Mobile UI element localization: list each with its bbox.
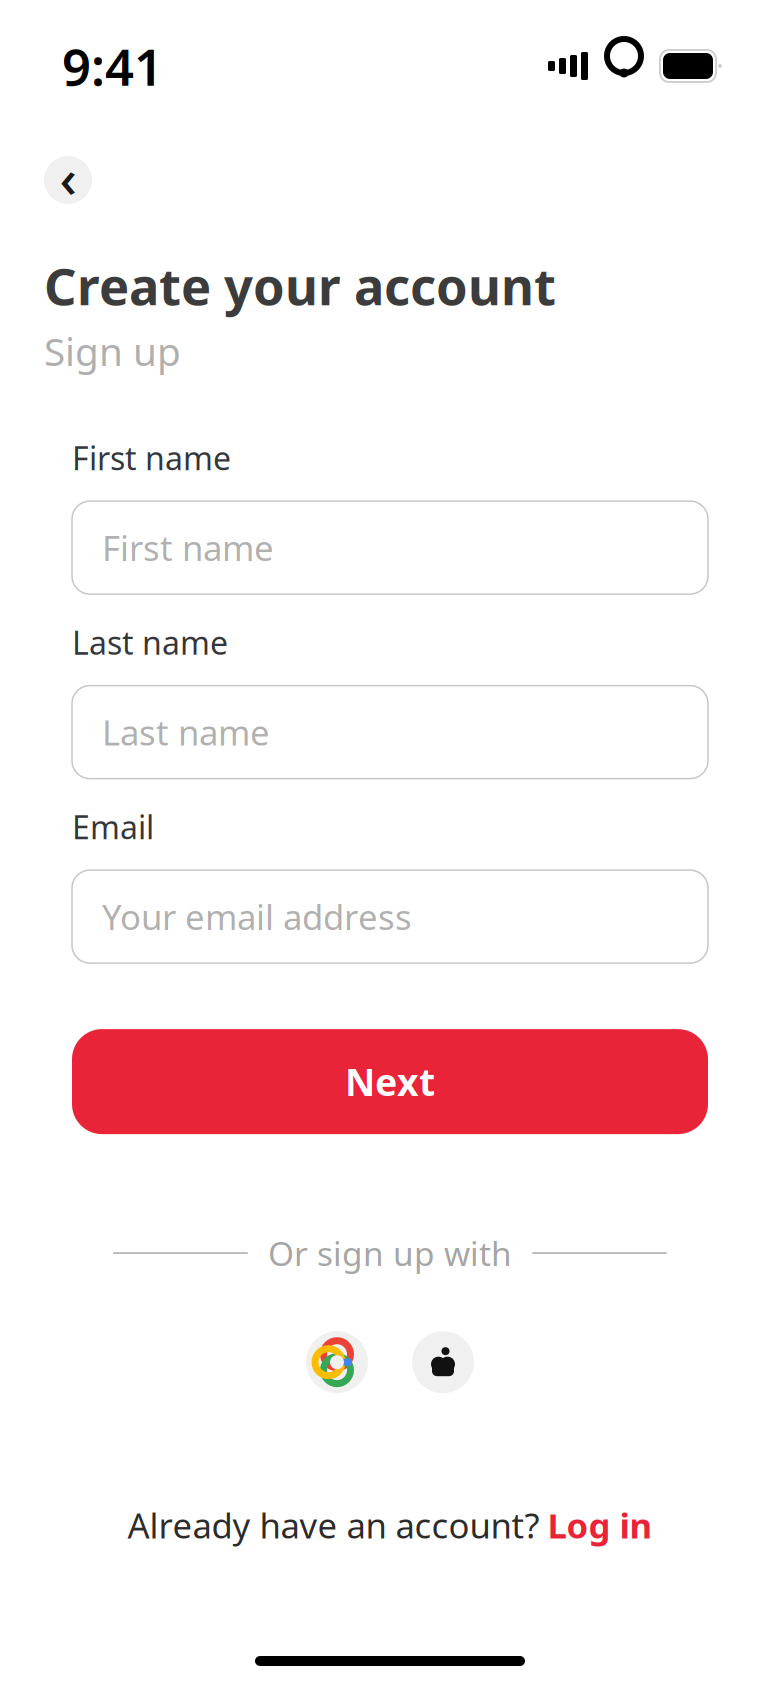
staticText: ‹ <box>59 142 76 212</box>
staticText: Log in <box>547 1502 652 1548</box>
staticText: 9:41 <box>62 32 163 100</box>
staticText: First name <box>102 525 274 571</box>
staticText: Your email address <box>102 894 412 940</box>
staticText: Email <box>72 806 154 848</box>
button[interactable]: Last name <box>72 686 708 779</box>
button[interactable]: Your email address <box>72 870 708 963</box>
staticText: Next <box>345 1057 435 1106</box>
button[interactable]: Next <box>72 1029 708 1134</box>
staticText: Create your account <box>44 252 556 319</box>
staticText: Or sign up with <box>268 1231 512 1275</box>
button[interactable]: Sign up with Apple <box>412 1331 474 1393</box>
button[interactable]: First name <box>72 501 708 594</box>
button[interactable]: Sign up with Google <box>306 1331 368 1393</box>
staticText: First name <box>72 437 231 479</box>
staticText: Last name <box>102 709 270 755</box>
button[interactable]: Already have an account? <box>107 1490 672 1560</box>
staticText: Last name <box>72 621 228 664</box>
staticText: Already have an account? <box>127 1502 539 1548</box>
button[interactable]: Back <box>44 156 92 204</box>
staticText: Sign up <box>44 325 181 377</box>
